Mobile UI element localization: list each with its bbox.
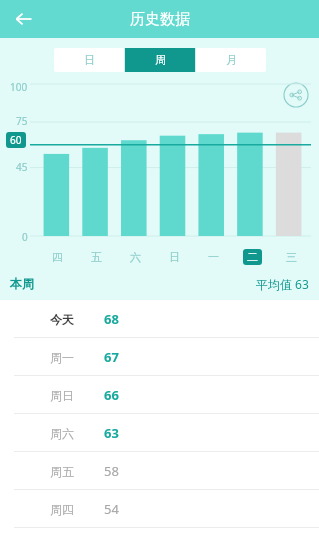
staticText: 周日 <box>50 388 74 403</box>
staticText: 日 <box>84 53 95 67</box>
button[interactable]: 周日 <box>0 376 319 414</box>
staticText: 周 <box>155 53 166 67</box>
button[interactable]: 周 <box>125 48 195 72</box>
button[interactable]: 五 <box>77 248 116 266</box>
staticText: 60 <box>10 133 22 147</box>
staticText: 周四 <box>50 502 74 517</box>
staticText: 四 <box>52 250 63 264</box>
button[interactable]: 周五 <box>0 452 319 490</box>
staticText: 三 <box>286 250 297 264</box>
staticText: 今天 <box>50 312 74 327</box>
staticText: 日 <box>169 250 180 264</box>
button[interactable]: 二 <box>233 248 272 266</box>
staticText: 63 <box>104 424 119 442</box>
staticText: 本周 <box>10 276 34 291</box>
button[interactable]: 日 <box>155 248 194 266</box>
staticText: 100 <box>10 80 28 94</box>
button[interactable]: Back <box>8 3 40 35</box>
staticText: 五 <box>91 250 102 264</box>
button[interactable]: 一 <box>194 248 233 266</box>
button[interactable]: 月 <box>196 48 266 72</box>
staticText: 二 <box>247 250 258 264</box>
staticText: 六 <box>130 250 141 264</box>
button[interactable]: 六 <box>116 248 155 266</box>
staticText: 周一 <box>50 350 74 365</box>
staticText: 75 <box>16 114 28 128</box>
staticText: 45 <box>16 160 28 174</box>
staticText: 平均值 63 <box>256 276 309 292</box>
staticText: 月 <box>226 53 237 67</box>
staticText: 一 <box>208 250 219 264</box>
staticText: 66 <box>104 386 119 404</box>
button[interactable]: 日 <box>54 48 124 72</box>
staticText: 历史数据 <box>130 10 190 29</box>
button[interactable]: 周六 <box>0 414 319 452</box>
button[interactable]: 周四 <box>0 490 319 528</box>
staticText: 周五 <box>50 464 74 479</box>
staticText: 68 <box>104 310 119 328</box>
staticText: 58 <box>104 462 119 480</box>
button[interactable]: 今天 <box>0 300 319 338</box>
button[interactable]: 四 <box>37 248 77 266</box>
staticText: 54 <box>104 500 119 518</box>
button[interactable]: Share <box>283 82 309 108</box>
staticText: 周六 <box>50 426 74 441</box>
button[interactable]: 三 <box>272 248 311 266</box>
staticText: 67 <box>104 348 119 366</box>
button[interactable]: 周一 <box>0 338 319 376</box>
staticText: 0 <box>22 230 28 244</box>
